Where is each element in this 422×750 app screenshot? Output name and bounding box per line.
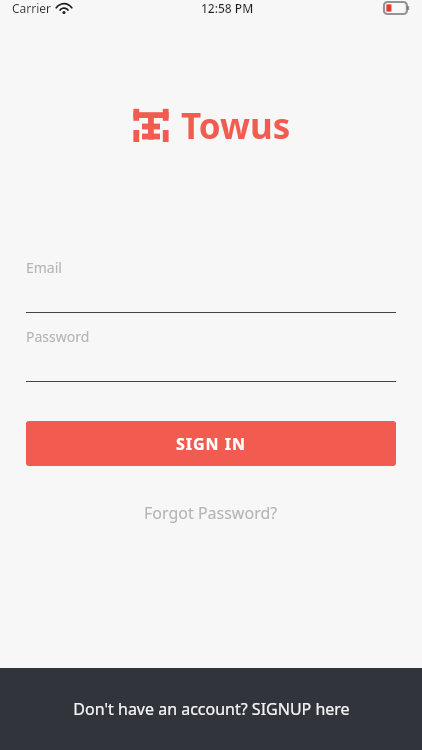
staticText: Don't have an account? SIGNUP here [73, 698, 350, 720]
staticText: Carrier [12, 0, 52, 16]
button[interactable]: Email [26, 258, 396, 313]
button[interactable]: Forgot Password? [128, 496, 294, 530]
staticText: 12:58 PM [201, 0, 254, 16]
other: Towus logo [131, 106, 171, 146]
staticText: Email [26, 258, 62, 277]
button[interactable]: SIGN IN [26, 421, 396, 466]
button[interactable]: Password [26, 327, 396, 382]
button[interactable]: Don't have an account? SIGNUP here [0, 668, 422, 750]
staticText: Forgot Password? [144, 502, 278, 524]
staticText: Towus [181, 102, 291, 150]
staticText: Password [26, 327, 90, 346]
staticText: SIGN IN [176, 433, 247, 455]
